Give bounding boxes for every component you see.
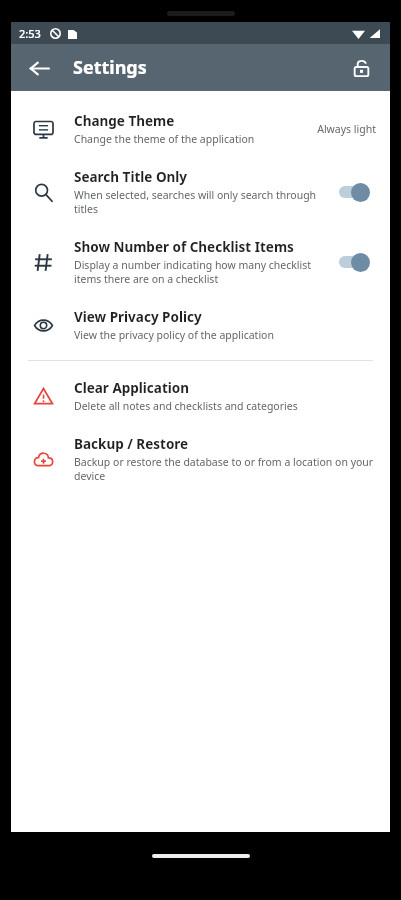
button[interactable]: Search Title Only <box>11 157 390 227</box>
staticText: View the privacy policy of the applicati… <box>74 328 274 342</box>
staticText: Show Number of Checklist Items <box>74 238 294 256</box>
staticText: 2:53 <box>19 26 41 41</box>
button[interactable]: Toggle <box>336 249 376 275</box>
staticText: Change Theme <box>74 112 175 130</box>
button[interactable]: Back <box>19 48 59 88</box>
staticText: Display a number indicating how many che… <box>74 258 330 286</box>
button[interactable]: Backup / Restore <box>11 424 390 494</box>
button[interactable]: Clear Application <box>11 368 390 424</box>
staticText: Always light <box>317 122 376 136</box>
staticText: Change the theme of the application <box>74 132 255 146</box>
staticText: Search Title Only <box>74 168 188 186</box>
staticText: Settings <box>73 55 147 80</box>
button[interactable]: View Privacy Policy <box>11 297 390 353</box>
button[interactable]: Change Theme <box>11 101 390 157</box>
staticText: When selected, searches will only search… <box>74 188 330 216</box>
staticText: Backup / Restore <box>74 435 189 453</box>
button[interactable]: Toggle <box>336 179 376 205</box>
button[interactable]: Show Number of Checklist Items <box>11 227 390 297</box>
button[interactable]: Lock <box>342 49 380 87</box>
staticText: View Privacy Policy <box>74 308 202 326</box>
staticText: Clear Application <box>74 379 190 397</box>
staticText: Delete all notes and checklists and cate… <box>74 399 298 413</box>
staticText: Backup or restore the database to or fro… <box>74 455 376 483</box>
